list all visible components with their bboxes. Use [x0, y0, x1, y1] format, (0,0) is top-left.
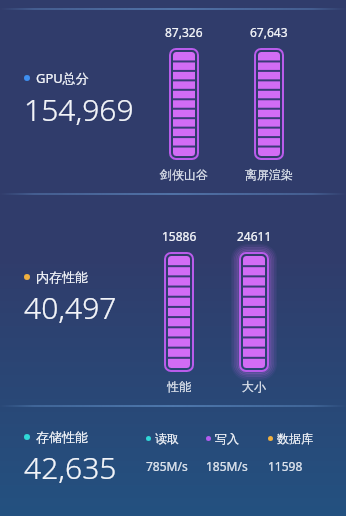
staticText: 离屏渲染 [245, 167, 293, 182]
staticText: 剑侠山谷 [160, 167, 208, 182]
staticText: 性能 [167, 379, 191, 394]
staticText: 40,497 [24, 287, 117, 328]
button[interactable]: 内存性能 [0, 195, 346, 405]
staticText: 数据库 [277, 431, 313, 446]
button[interactable]: GPU总分 [0, 10, 346, 193]
staticText: 785M/s [146, 458, 188, 474]
staticText: 15886 [162, 228, 197, 244]
staticText: 读取 [155, 431, 179, 446]
staticText: GPU总分 [36, 69, 89, 87]
staticText: 内存性能 [36, 269, 88, 285]
staticText: 11598 [268, 458, 303, 474]
staticText: 185M/s [206, 458, 248, 474]
staticText: 24611 [237, 228, 272, 244]
staticText: 存储性能 [36, 429, 88, 445]
staticText: 154,969 [24, 89, 134, 130]
staticText: 67,643 [250, 24, 288, 40]
staticText: 大小 [242, 379, 266, 394]
staticText: 写入 [215, 431, 239, 446]
staticText: 42,635 [24, 447, 117, 488]
staticText: 87,326 [165, 24, 203, 40]
button[interactable]: 存储性能 [0, 407, 346, 507]
